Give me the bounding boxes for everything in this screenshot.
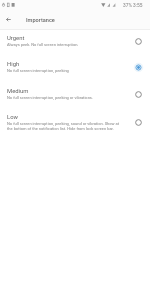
- staticText: Importance: [26, 17, 55, 24]
- button[interactable]: Urgent: [0, 29, 150, 55]
- staticText: High: [7, 61, 20, 68]
- button[interactable]: High: [0, 55, 150, 81]
- staticText: 37% 3:55: [123, 3, 143, 9]
- button[interactable]: Low: [0, 108, 150, 136]
- staticText: No full screen interruption, peeking or …: [7, 95, 93, 100]
- staticText: No full screen interruption, peeking: [7, 68, 69, 73]
- staticText: Always peek. No full screen interruption…: [7, 42, 79, 47]
- staticText: No full screen interruption, peeking, so…: [7, 121, 125, 131]
- button[interactable]: Medium: [0, 82, 150, 108]
- button[interactable]: Navigate up: [1, 12, 16, 27]
- staticText: Urgent: [7, 35, 25, 42]
- staticText: Low: [7, 114, 18, 121]
- staticText: Medium: [7, 88, 29, 95]
